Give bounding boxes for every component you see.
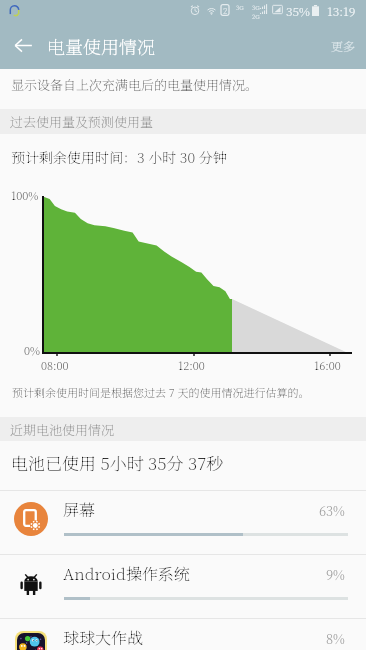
staticText: 3G	[236, 3, 244, 12]
staticText: 100%	[11, 187, 39, 203]
staticText: 电池已使用 5小时 35分 37秒	[11, 450, 224, 474]
staticText: 16:00	[314, 357, 341, 373]
staticText: 球球大作战	[63, 626, 144, 649]
staticText: 屏幕	[63, 498, 96, 521]
staticText: 0%	[24, 342, 40, 358]
staticText: 3G	[252, 3, 260, 12]
staticText: 8%	[326, 629, 345, 648]
button[interactable]: Android操作系统	[0, 554, 366, 618]
staticText: 预计剩余使用时间是根据您过去 7 天的使用情况进行估算的。	[12, 384, 310, 400]
staticText: 2	[223, 5, 228, 16]
staticText: 12:00	[178, 357, 205, 373]
staticText: 08:00	[41, 357, 69, 373]
staticText: 13:19	[327, 2, 356, 19]
staticText: 近期电池使用情况	[10, 420, 115, 439]
staticText: 2G	[252, 12, 260, 21]
staticText: 电量使用情况	[47, 33, 155, 59]
staticText: 更多	[331, 37, 356, 54]
staticText: 显示设备自上次充满电后的电量使用情况。	[11, 75, 259, 94]
button[interactable]: 球球大作战	[0, 618, 366, 650]
button[interactable]: 更多	[331, 37, 356, 54]
button[interactable]: 屏幕	[0, 490, 366, 554]
button[interactable]: Back	[0, 22, 47, 69]
staticText: 9%	[326, 565, 345, 584]
staticText: 63%	[319, 501, 345, 520]
staticText: Android操作系统	[63, 562, 190, 585]
staticText: 过去使用量及预测使用量	[10, 112, 154, 131]
staticText: 35%	[286, 2, 310, 19]
staticText: 预计剩余使用时间：3 小时 30 分钟	[11, 147, 227, 167]
